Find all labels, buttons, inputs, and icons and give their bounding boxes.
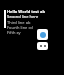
- staticText: Second line here: [7, 14, 39, 19]
- staticText: Third line ab: [7, 20, 31, 25]
- staticText: Fourth line cd: [7, 25, 33, 30]
- staticText: Fifth xy: [7, 30, 21, 35]
- staticText: Hello World test ab: [7, 9, 46, 14]
